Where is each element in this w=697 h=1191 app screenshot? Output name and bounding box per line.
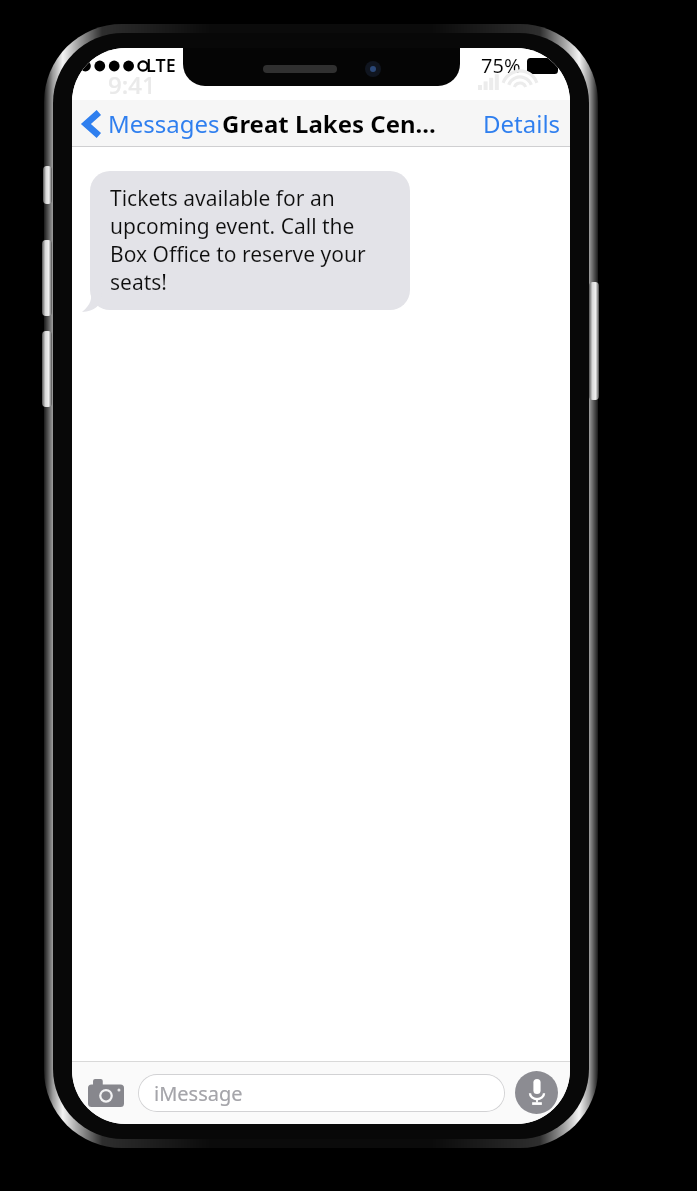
button[interactable]: Details <box>480 102 564 145</box>
staticText: 75% <box>481 52 521 79</box>
button[interactable]: Record audio message <box>515 1071 558 1114</box>
staticText: 9:41 <box>108 68 156 100</box>
staticText: iMessage <box>154 1080 243 1107</box>
staticText: LTE <box>146 53 176 78</box>
button[interactable]: Tickets available for an upcoming event.… <box>90 171 410 310</box>
staticText: Details <box>483 107 561 140</box>
staticText: Messages <box>108 107 220 140</box>
staticText: Great Lakes Cen... <box>222 107 436 140</box>
button[interactable]: Camera <box>84 1075 128 1111</box>
staticText: Tickets available for an upcoming event.… <box>110 184 392 296</box>
button[interactable]: iMessage <box>138 1074 505 1112</box>
button[interactable]: Messages <box>80 102 223 145</box>
